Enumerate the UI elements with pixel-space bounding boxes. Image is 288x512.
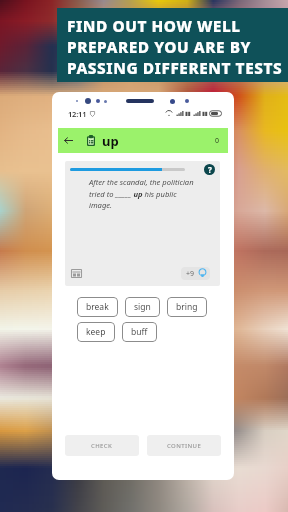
other: Back bbox=[64, 136, 73, 145]
staticText: CHECK bbox=[91, 442, 113, 450]
staticText: up bbox=[102, 132, 119, 150]
button[interactable]: bring bbox=[167, 297, 207, 317]
staticText: CONTINUE bbox=[167, 442, 202, 450]
button[interactable]: +9 bbox=[181, 267, 210, 280]
staticText: FIND OUT HOW WELL bbox=[67, 16, 241, 37]
staticText: 12:11 bbox=[68, 109, 87, 119]
staticText: keep bbox=[86, 326, 106, 338]
staticText: PASSING DIFFERENT TESTS bbox=[67, 58, 283, 79]
staticText: buff bbox=[131, 326, 148, 338]
staticText: +9 bbox=[186, 269, 195, 279]
staticText: ? bbox=[208, 164, 212, 175]
staticText: bring bbox=[176, 301, 198, 313]
button[interactable]: CHECK bbox=[65, 435, 139, 456]
button[interactable]: buff bbox=[122, 322, 157, 342]
button[interactable]: Dictionary bbox=[71, 268, 82, 279]
staticText: break bbox=[86, 301, 109, 313]
staticText: 0 bbox=[215, 136, 220, 146]
button[interactable]: Back bbox=[58, 128, 228, 153]
staticText: After the scandal, the politician tried … bbox=[89, 177, 201, 210]
staticText: sign bbox=[134, 301, 151, 313]
staticText: PREPARED YOU ARE BY bbox=[67, 37, 251, 58]
button[interactable]: Help bbox=[204, 164, 215, 175]
button[interactable]: keep bbox=[77, 322, 115, 342]
button[interactable]: sign bbox=[125, 297, 160, 317]
button[interactable]: CONTINUE bbox=[147, 435, 221, 456]
button[interactable]: break bbox=[77, 297, 118, 317]
